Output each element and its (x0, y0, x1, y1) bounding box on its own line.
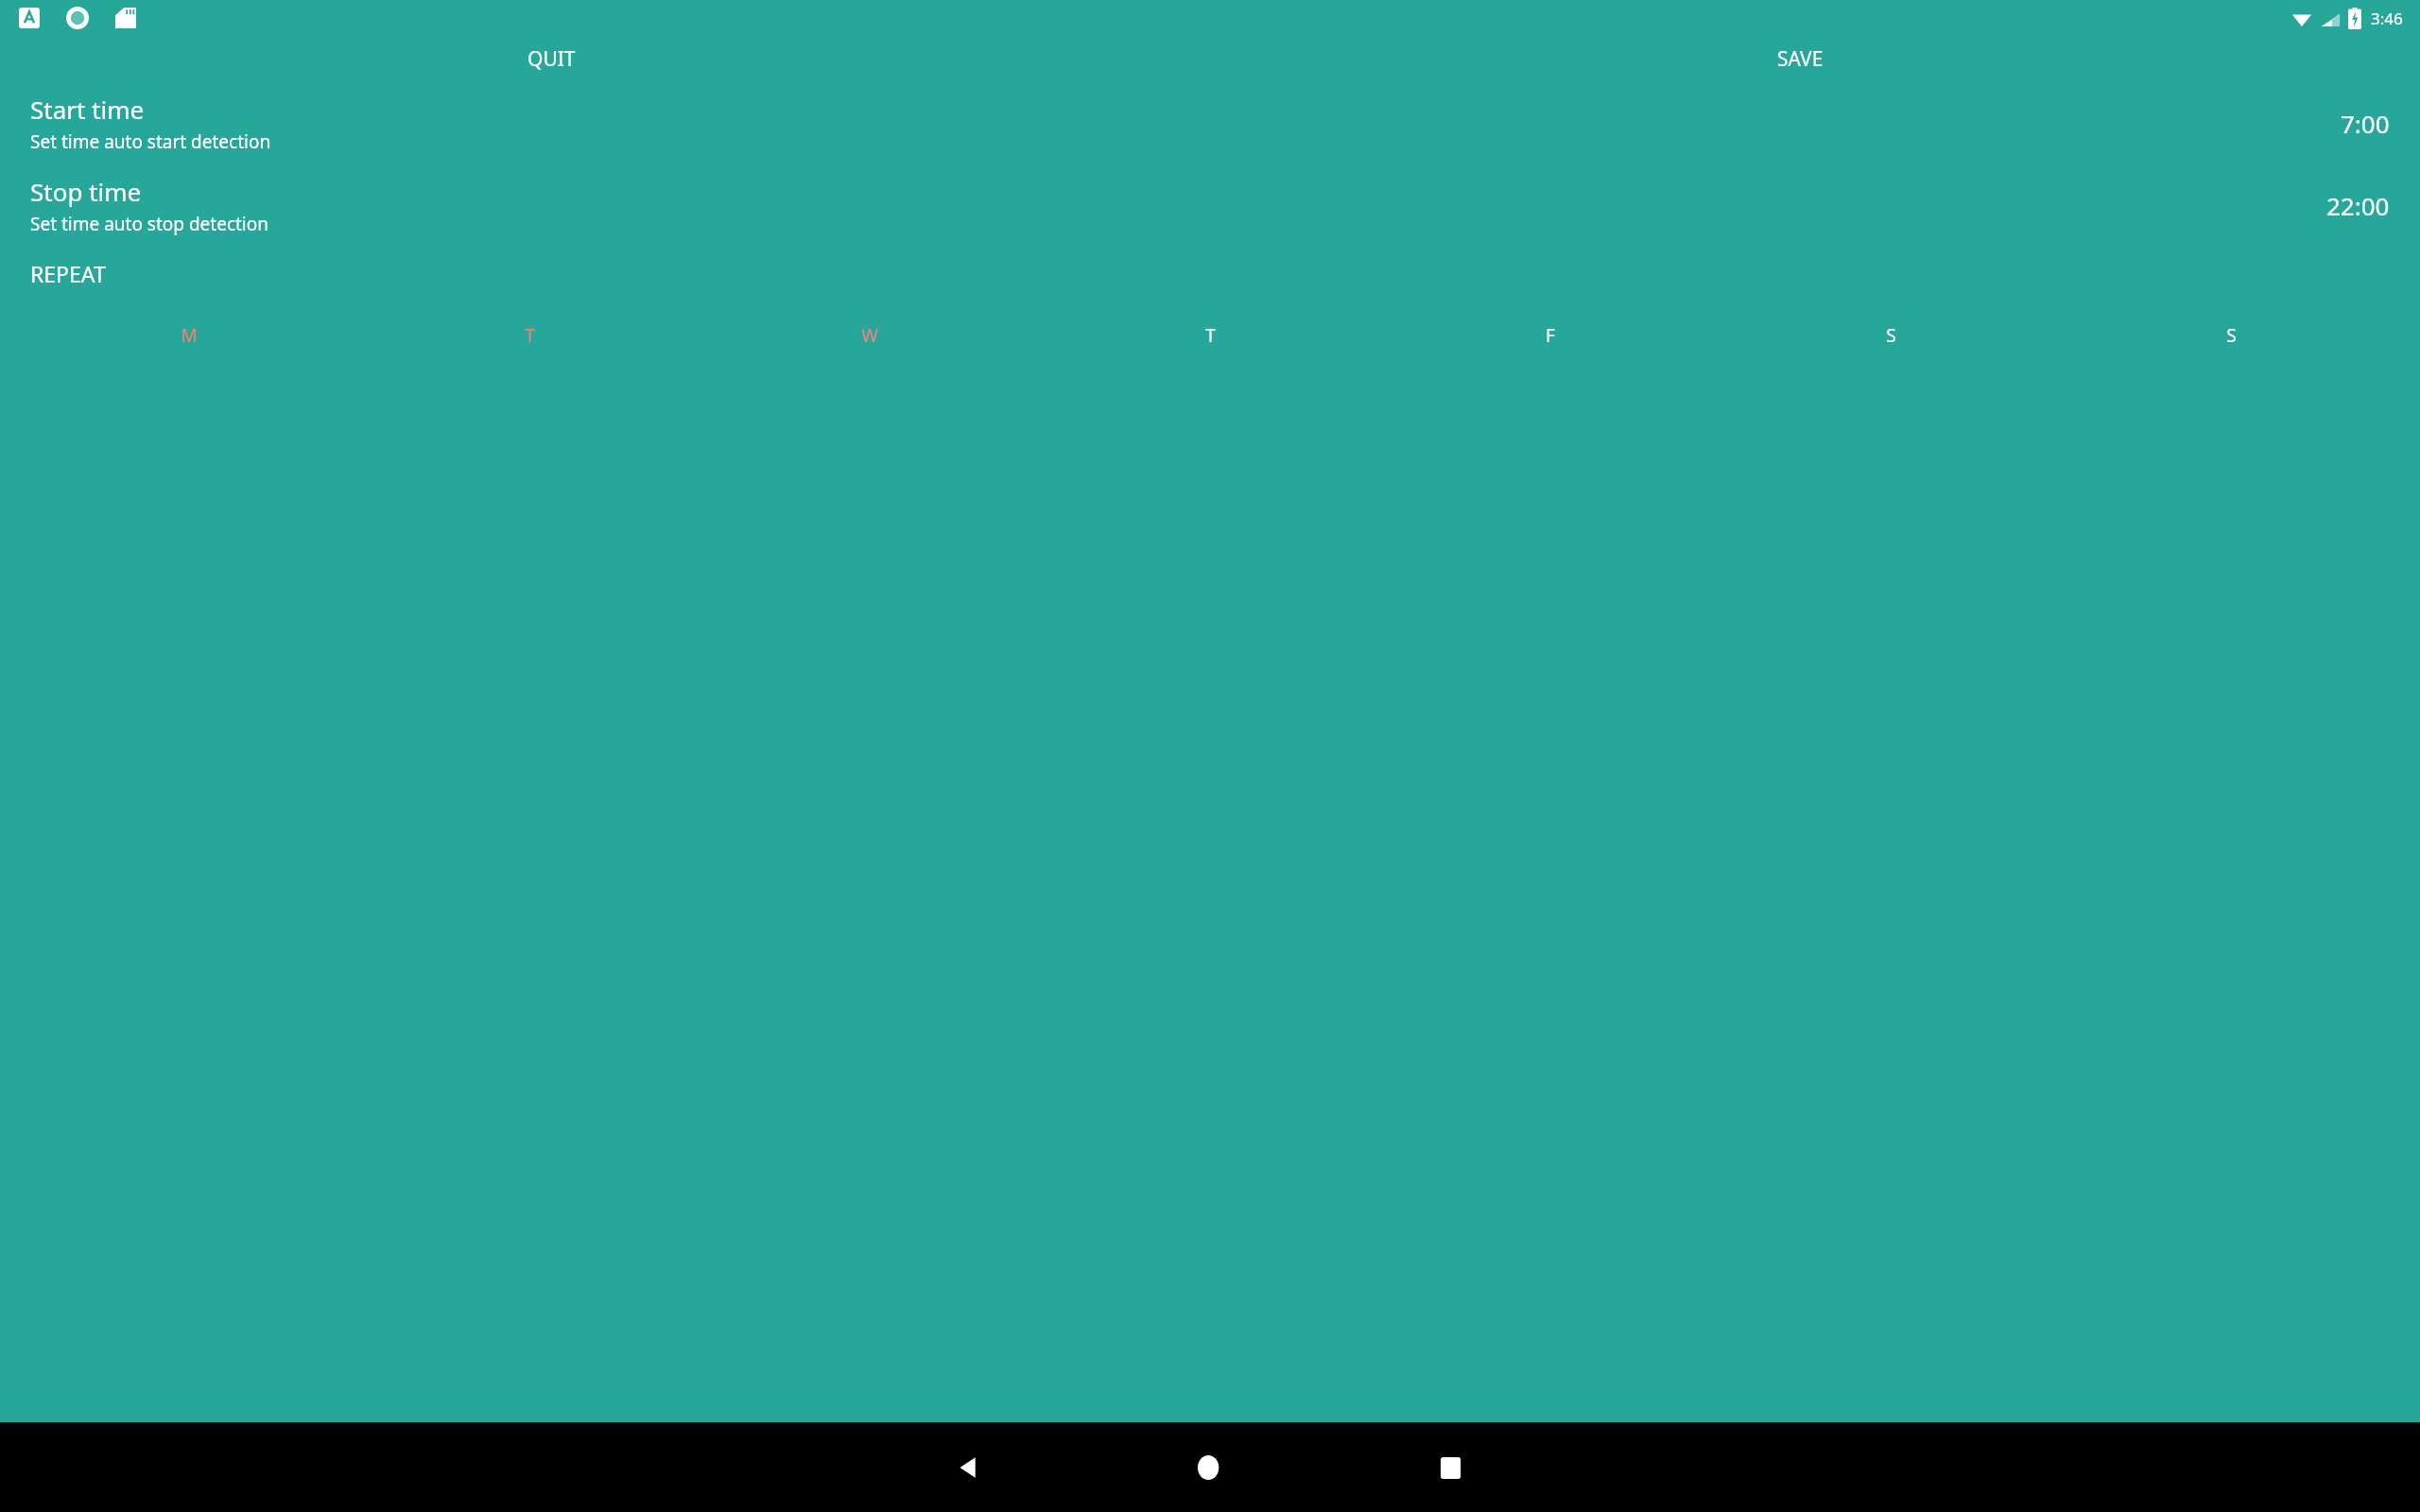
button[interactable]: T (1189, 315, 1231, 356)
staticText: QUIT (527, 45, 576, 73)
staticText: Stop time (30, 175, 142, 208)
staticText: 3:46 (2371, 8, 2403, 29)
staticText: REPEAT (30, 259, 106, 288)
staticText: T (525, 323, 535, 348)
button[interactable]: SAVE (1760, 38, 1841, 80)
staticText: T (1205, 323, 1216, 348)
staticText: 7:00 (2341, 107, 2390, 140)
staticText: F (1546, 323, 1555, 348)
button[interactable]: W (849, 315, 890, 356)
button[interactable]: M (168, 315, 210, 356)
button[interactable]: Start time (0, 89, 2420, 158)
staticText: W (861, 323, 878, 348)
button[interactable]: S (2210, 315, 2252, 356)
staticText: 22:00 (2326, 189, 2390, 222)
button[interactable]: Stop time (0, 171, 2420, 240)
button[interactable]: Home (1184, 1441, 1236, 1494)
button[interactable]: QUIT (510, 38, 593, 80)
staticText: SAVE (1777, 45, 1824, 73)
button[interactable]: T (509, 315, 550, 356)
staticText: Set time auto start detection (30, 129, 271, 154)
staticText: Start time (30, 93, 145, 126)
button[interactable]: S (1870, 315, 1911, 356)
button[interactable]: F (1530, 315, 1571, 356)
staticText: M (181, 323, 198, 348)
button[interactable]: Recent apps (1425, 1441, 1478, 1494)
staticText: Set time auto stop detection (30, 212, 268, 236)
button[interactable]: Back (942, 1441, 995, 1494)
staticText: S (1886, 323, 1896, 348)
staticText: S (2226, 323, 2237, 348)
